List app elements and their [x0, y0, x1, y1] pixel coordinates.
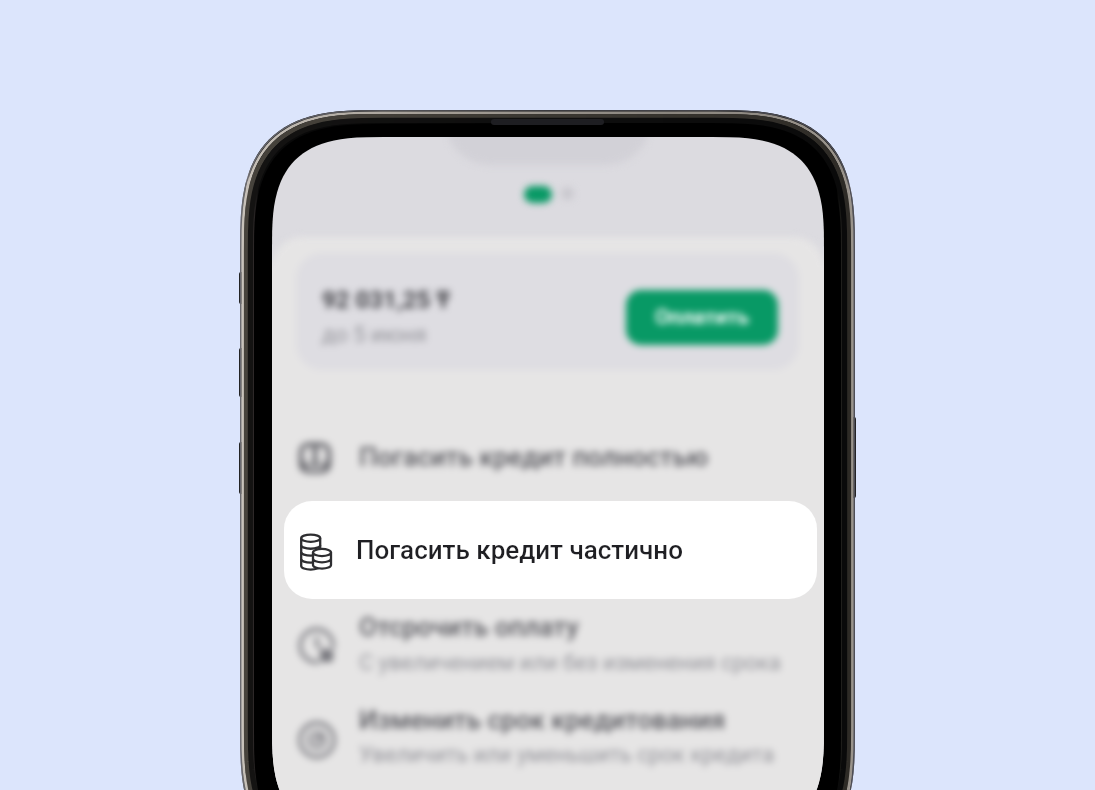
button[interactable]: Погасить кредит частично	[284, 501, 817, 599]
staticText: Отсрочить оплату	[359, 612, 579, 642]
button[interactable]: Погасить кредит полностью	[272, 419, 824, 497]
button[interactable]: Оплатить	[626, 290, 778, 345]
staticText: до 5 июня	[322, 322, 427, 348]
button[interactable]: Изменить срок кредитования	[272, 694, 824, 784]
staticText: Увеличить или уменьшить срок кредита	[359, 742, 775, 768]
staticText: Погасить кредит полностью	[359, 442, 709, 472]
button[interactable]: Отсрочить оплату	[272, 601, 824, 691]
staticText: 92 031,25 ₸	[322, 282, 450, 315]
staticText: Погасить кредит частично	[356, 535, 683, 565]
staticText: Оплатить	[655, 305, 750, 330]
staticText: С увеличением или без изменения срока	[359, 650, 781, 676]
staticText: Изменить срок кредитования	[359, 705, 726, 735]
